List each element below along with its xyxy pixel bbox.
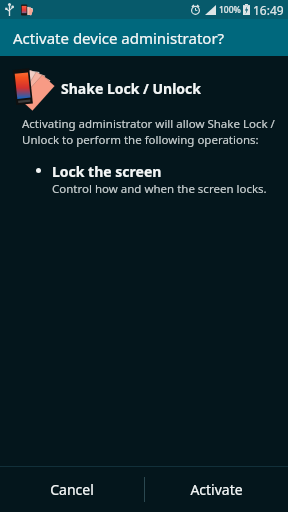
staticText: Activating administrator will allow Shak… [22, 116, 275, 147]
staticText: Shake Lock / Unlock [61, 79, 201, 98]
staticText: Activate [190, 480, 243, 499]
staticText: Lock the screen [52, 162, 162, 181]
button[interactable]: Cancel [0, 467, 144, 512]
staticText: 100% [219, 4, 241, 16]
button[interactable]: Activate [144, 467, 288, 512]
staticText: 16:49 [253, 2, 284, 18]
staticText: Control how and when the screen locks. [52, 181, 267, 197]
staticText: Activate device administrator? [13, 28, 225, 48]
staticText: Cancel [50, 480, 94, 499]
